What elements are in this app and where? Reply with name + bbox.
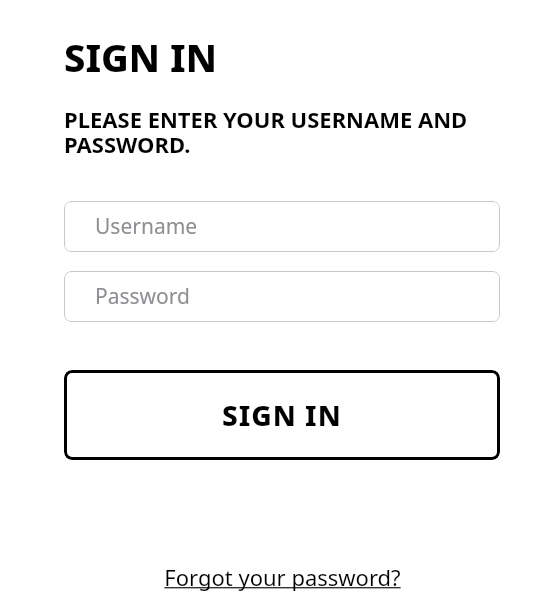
- staticText: PLEASE ENTER YOUR USERNAME AND PASSWORD.: [64, 104, 500, 160]
- staticText: Forgot your password?: [164, 562, 401, 592]
- staticText: SIGN IN: [222, 396, 342, 434]
- button[interactable]: Username: [64, 201, 500, 252]
- staticText: SIGN IN: [64, 31, 217, 83]
- button[interactable]: Password: [64, 271, 500, 322]
- staticText: Password: [95, 282, 190, 311]
- staticText: Username: [95, 212, 198, 241]
- button[interactable]: Forgot your password?: [158, 558, 407, 596]
- button[interactable]: SIGN IN: [64, 370, 500, 460]
